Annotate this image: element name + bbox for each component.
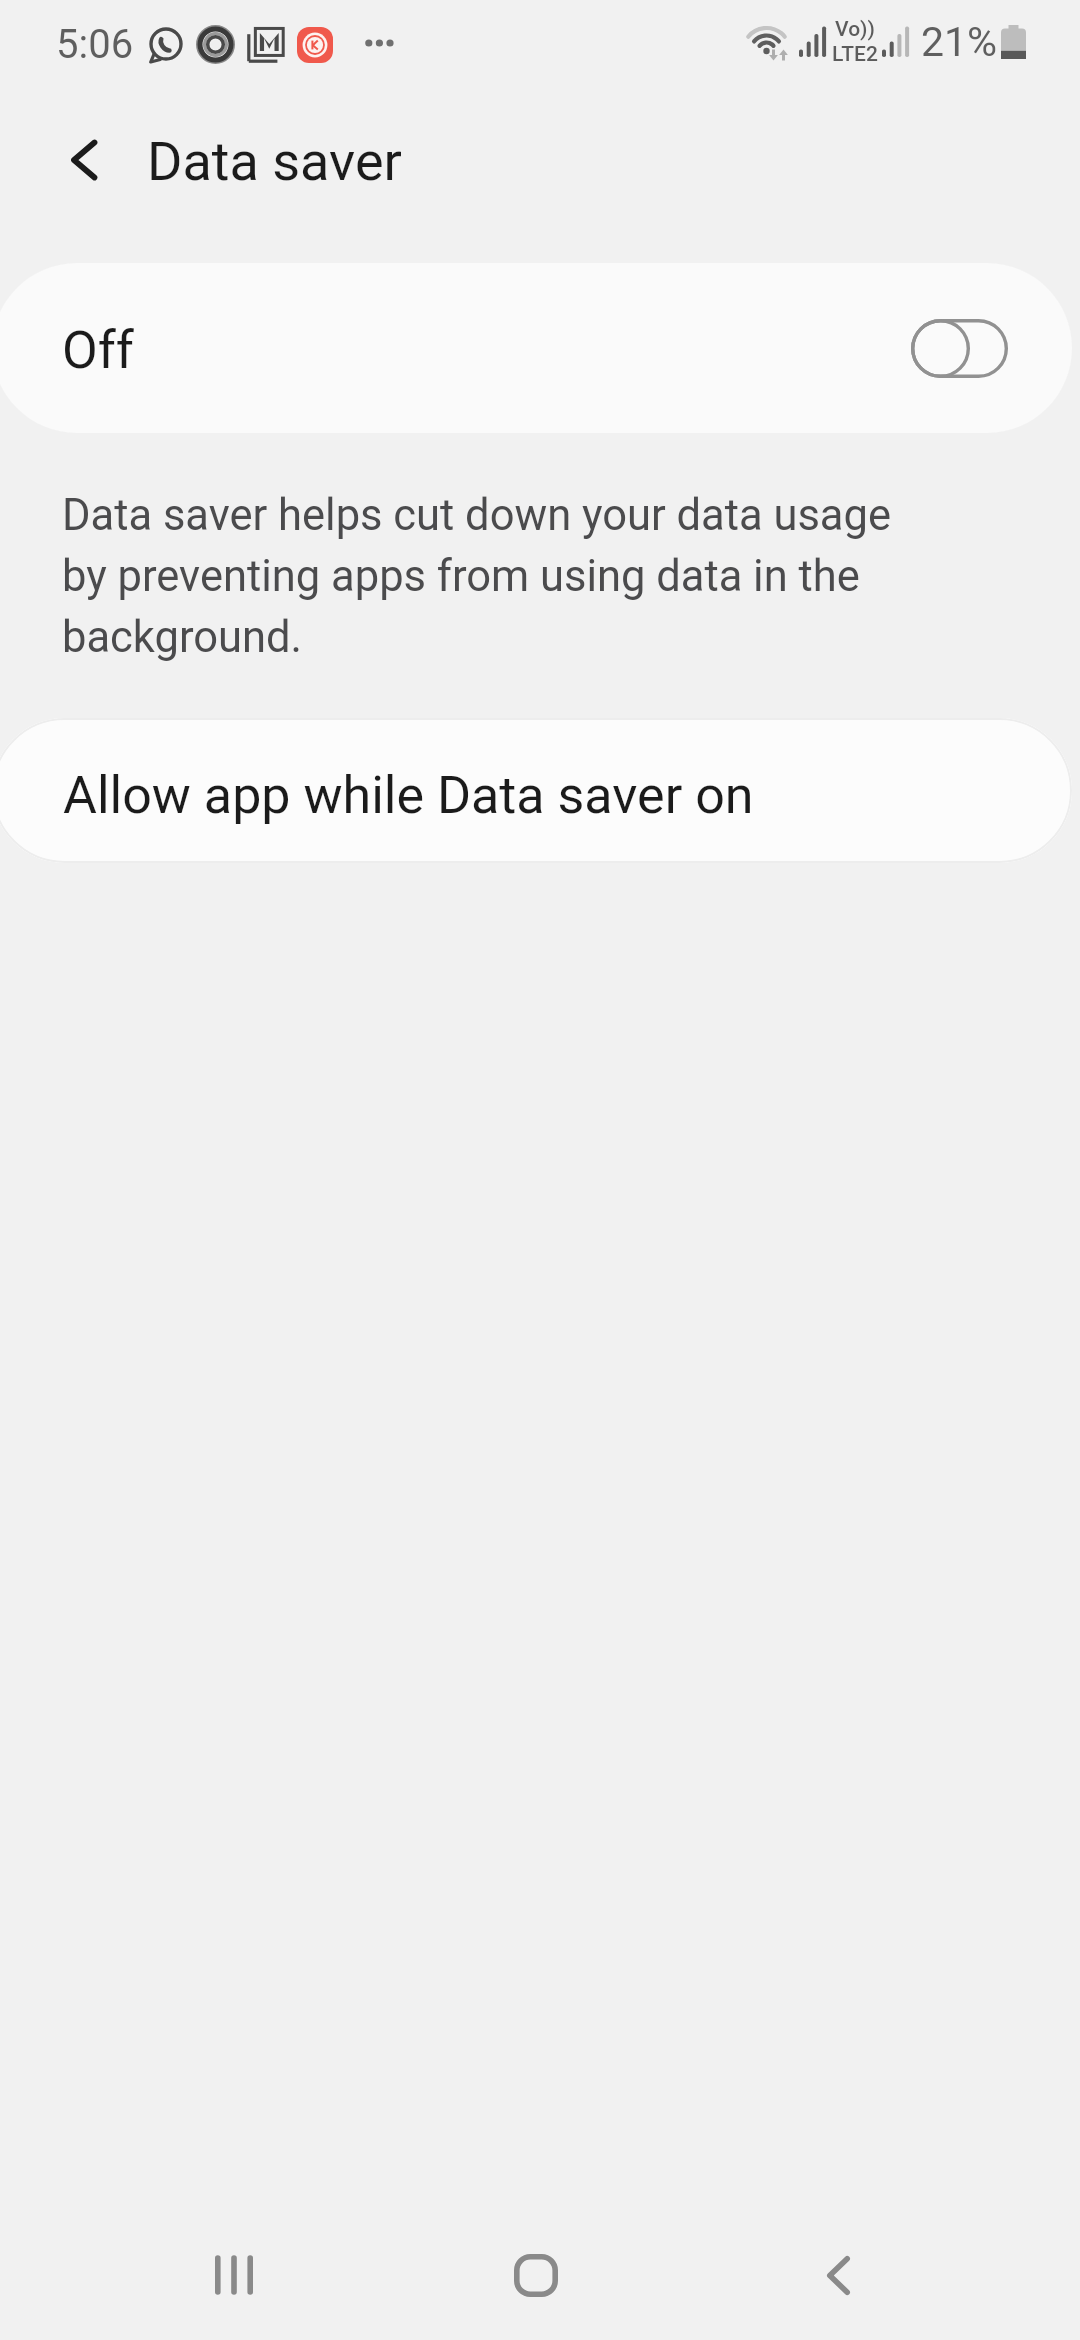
- button[interactable]: Allow app while Data saver on: [0, 718, 1072, 863]
- button[interactable]: Navigate up: [38, 114, 128, 204]
- staticText: Data saver helps cut down your data usag…: [62, 490, 922, 663]
- staticText: 5:06: [56, 21, 134, 68]
- button[interactable]: Off: [0, 263, 1072, 433]
- staticText: Allow app while Data saver on: [63, 765, 754, 826]
- staticText: Vo)): [835, 17, 875, 42]
- staticText: Off: [62, 320, 134, 381]
- button[interactable]: Home: [476, 2215, 596, 2335]
- button[interactable]: Back: [778, 2215, 898, 2335]
- button[interactable]: Recent apps: [174, 2215, 294, 2335]
- staticText: 21%: [921, 18, 998, 66]
- staticText: Data saver: [147, 130, 402, 193]
- button[interactable]: Data saver off: [881, 289, 1038, 408]
- staticText: LTE2: [832, 42, 878, 67]
